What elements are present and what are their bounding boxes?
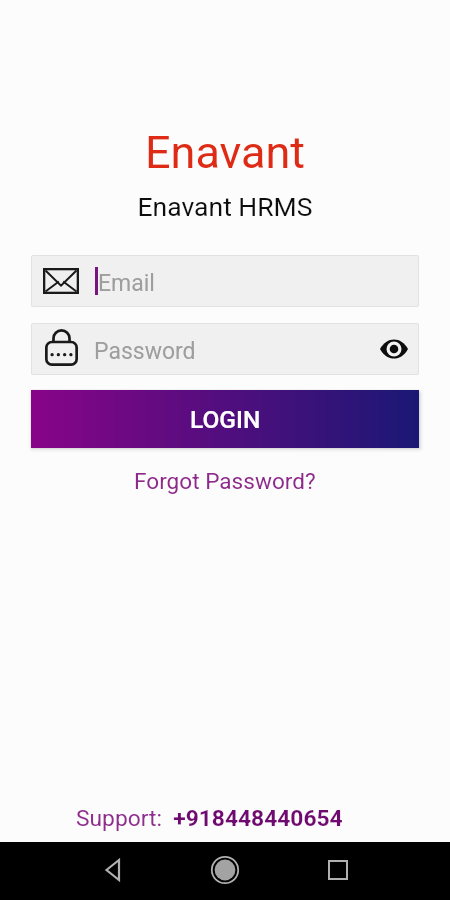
button[interactable]: Back: [91, 849, 135, 893]
staticText: LOGIN: [190, 405, 261, 434]
button[interactable]: Show password: [377, 332, 411, 366]
button[interactable]: Recent apps: [316, 849, 360, 893]
staticText: Enavant HRMS: [0, 191, 450, 222]
button[interactable]: Forgot Password?: [134, 468, 316, 494]
button[interactable]: Support: +918448440654: [76, 805, 343, 832]
button[interactable]: LOGIN: [31, 390, 419, 448]
button[interactable]: Email: [31, 255, 419, 307]
staticText: Email: [98, 270, 155, 297]
button[interactable]: Password: [31, 323, 419, 375]
staticText: Enavant: [0, 126, 450, 179]
staticText: Forgot Password?: [134, 468, 316, 494]
button[interactable]: Home: [203, 849, 247, 893]
staticText: Password: [94, 338, 196, 365]
staticText: Support: +918448440654: [76, 805, 343, 832]
